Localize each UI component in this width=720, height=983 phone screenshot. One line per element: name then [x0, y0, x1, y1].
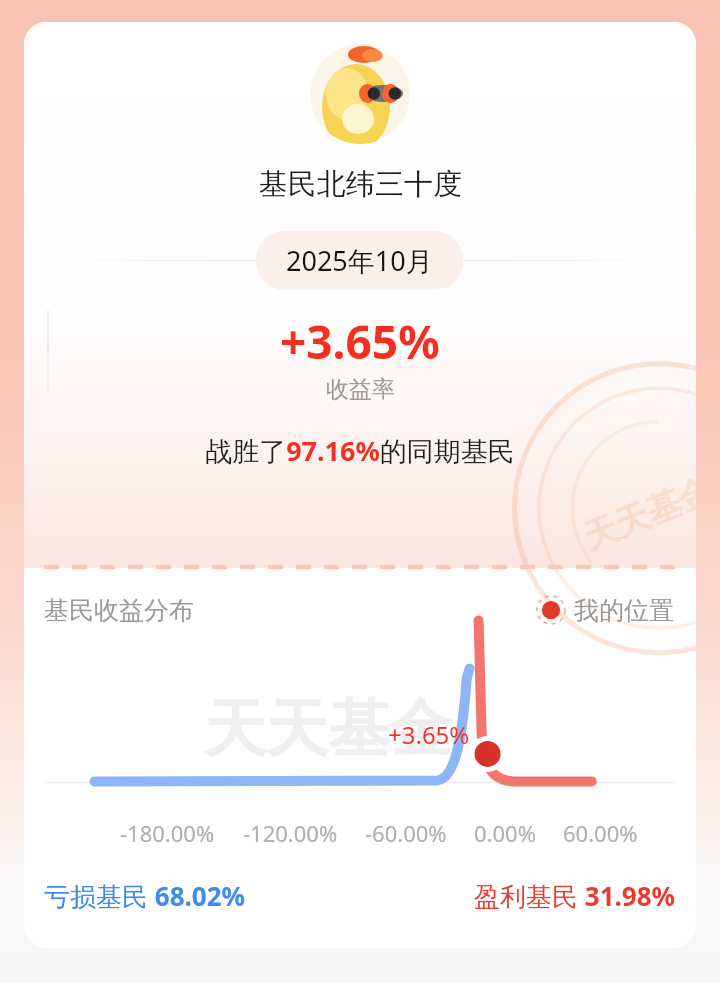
staticText: 战胜了97.16%的同期基民: [205, 432, 515, 469]
staticText: 亏损基民 68.02%: [44, 878, 246, 914]
staticText: 60.00%: [563, 818, 638, 848]
staticText: +3.65%: [388, 718, 470, 751]
button[interactable]: Profile avatar: [310, 44, 410, 144]
staticText: 基民收益分布: [44, 595, 194, 626]
staticText: -120.00%: [243, 818, 338, 848]
staticText: +3.65%: [280, 310, 440, 373]
staticText: 0.00%: [474, 818, 536, 848]
staticText: 收益率: [326, 375, 395, 404]
staticText: 2025年10月: [286, 242, 433, 279]
staticText: 天天基金: [577, 468, 696, 559]
staticText: -60.00%: [365, 818, 447, 848]
staticText: 基民北纬三十度: [259, 166, 462, 203]
staticText: 我的位置: [574, 595, 674, 626]
staticText: -180.00%: [120, 818, 215, 848]
button[interactable]: 2025年10月: [256, 231, 463, 290]
staticText: 天天基金: [204, 690, 452, 768]
button[interactable]: 我的位置: [535, 594, 674, 626]
staticText: 盈利基民 31.98%: [474, 878, 676, 914]
